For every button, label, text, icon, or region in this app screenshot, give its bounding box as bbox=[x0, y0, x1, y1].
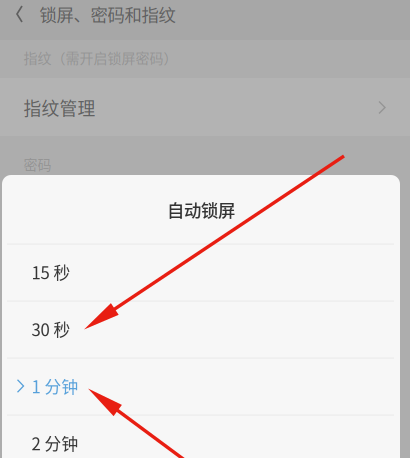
staticText: 30 秒 bbox=[31, 317, 70, 341]
staticText: 自动锁屏 bbox=[167, 197, 235, 222]
staticText: 指纹（需开启锁屏密码） bbox=[23, 47, 177, 68]
button[interactable]: 指纹管理 bbox=[0, 78, 410, 136]
staticText: 密码 bbox=[23, 154, 51, 174]
button[interactable]: 返回 bbox=[1, 0, 37, 29]
button[interactable]: 15 秒 bbox=[2, 243, 400, 300]
staticText: 锁屏、密码和指纹 bbox=[39, 1, 175, 27]
button[interactable]: 30 秒 bbox=[2, 300, 400, 357]
staticText: 1 分钟 bbox=[31, 374, 78, 398]
button[interactable]: 2 分钟 bbox=[2, 414, 400, 458]
staticText: 15 秒 bbox=[31, 260, 70, 284]
staticText: 指纹管理 bbox=[23, 95, 95, 120]
staticText: 2 分钟 bbox=[31, 431, 78, 455]
button[interactable]: 1 分钟 bbox=[2, 357, 400, 414]
